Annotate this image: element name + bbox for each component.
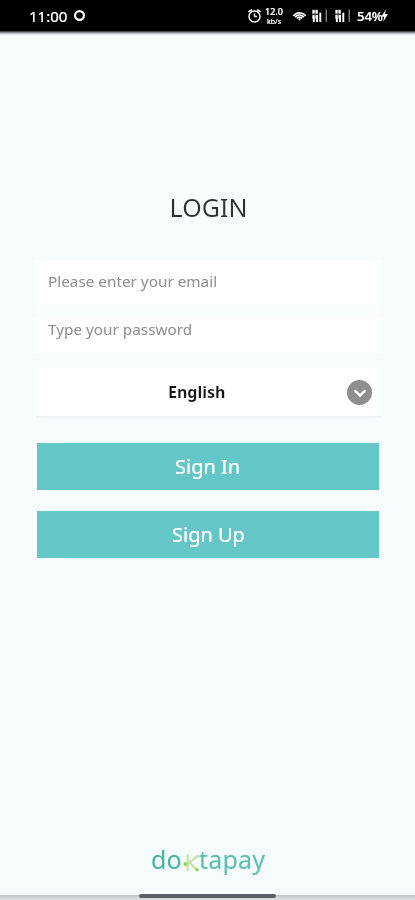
staticText: do	[151, 842, 182, 876]
staticText: tapay	[199, 842, 266, 876]
staticText: 12.0	[265, 5, 283, 17]
staticText: Type your password	[48, 319, 193, 340]
button[interactable]: English	[36, 368, 381, 418]
button[interactable]: Type your password	[35, 307, 381, 353]
staticText: Sign In	[175, 453, 241, 480]
button[interactable]: Sign Up	[37, 511, 379, 558]
other: Select language	[347, 380, 372, 405]
staticText: Sign Up	[172, 521, 245, 548]
staticText: 54%	[357, 7, 383, 25]
staticText: English	[168, 381, 226, 403]
staticText: 11:00	[29, 6, 68, 26]
staticText: Please enter your email	[48, 271, 218, 292]
staticText: LOGIN	[1, 190, 415, 224]
button[interactable]: Please enter your email	[35, 260, 381, 304]
staticText: kb/s	[267, 17, 281, 27]
button[interactable]: Sign In	[37, 443, 379, 490]
